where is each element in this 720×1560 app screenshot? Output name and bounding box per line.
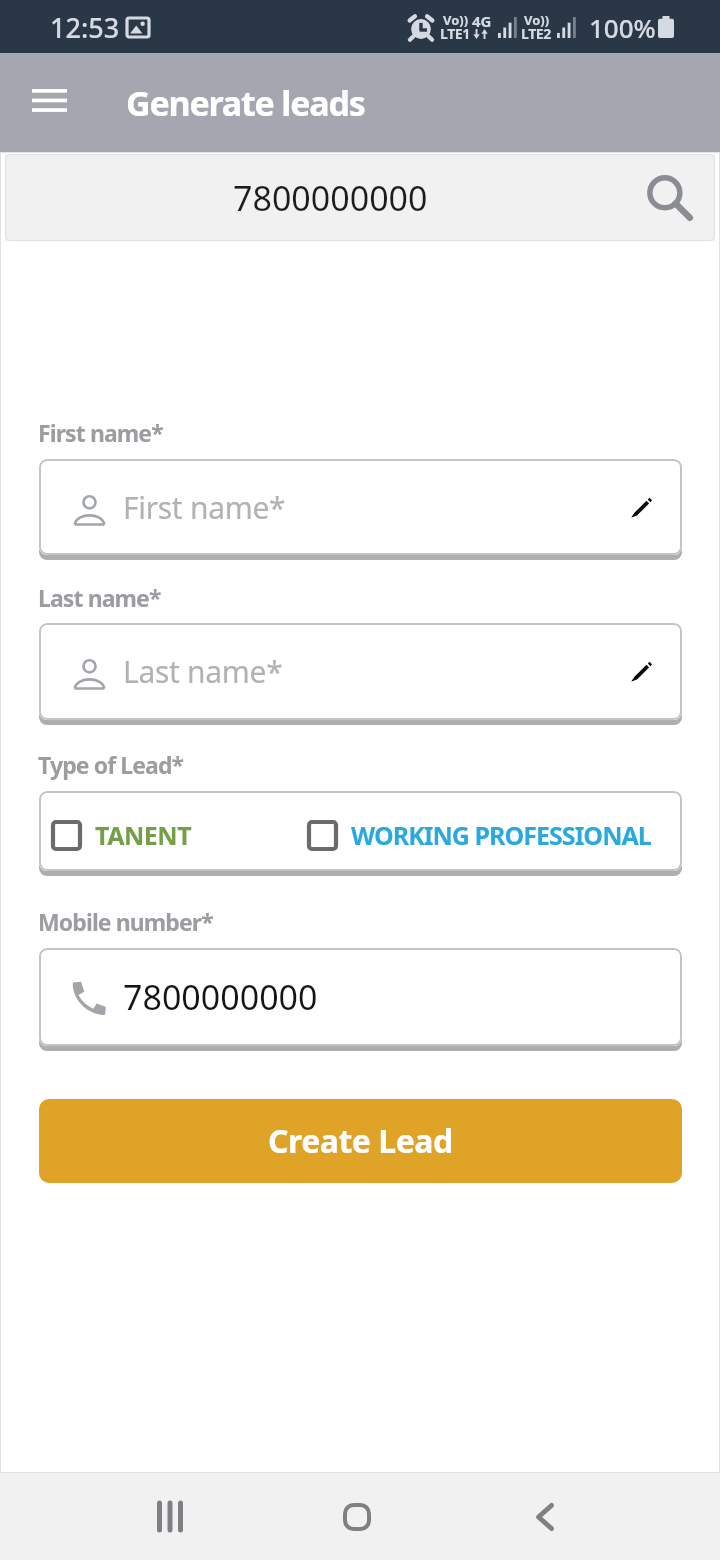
other: Edit [631,661,652,682]
button[interactable]: Home [312,1473,402,1560]
staticText: First name* [123,487,286,528]
staticText: LTE2 [521,24,551,43]
staticText: 7800000000 [123,974,318,1020]
staticText: 7800000000 [233,175,428,221]
button[interactable]: First name* [39,459,682,555]
staticText: 12:53 [50,9,120,46]
button[interactable]: Create Lead [39,1099,682,1183]
staticText: Mobile number* [38,906,213,937]
staticText: Vo)) [524,11,550,29]
staticText: 100% [589,10,656,45]
button[interactable]: Menu [14,68,84,138]
staticText: Vo)) [443,11,469,29]
staticText: Create Lead [268,1119,453,1163]
staticText: WORKING PROFESSIONAL [351,818,651,852]
button[interactable]: Last name* [39,623,682,720]
other: Edit [631,497,652,518]
button[interactable]: 7800000000 [39,948,682,1046]
staticText: LTE1 [440,24,470,43]
button[interactable]: TANENT [51,818,192,852]
button[interactable]: WORKING PROFESSIONAL [307,818,651,852]
staticText: Last name* [123,651,283,692]
staticText: Type of Lead* [38,749,184,780]
staticText: Generate leads [126,80,365,126]
other: Search [643,172,695,224]
staticText: Last name* [38,582,161,613]
button[interactable]: Back [500,1473,590,1560]
staticText: 4G [472,11,492,31]
button[interactable]: Recents [125,1473,215,1560]
button[interactable]: TANENT [39,791,682,871]
staticText: First name* [38,417,163,448]
staticText: TANENT [95,818,192,852]
button[interactable]: 7800000000 [5,154,715,241]
